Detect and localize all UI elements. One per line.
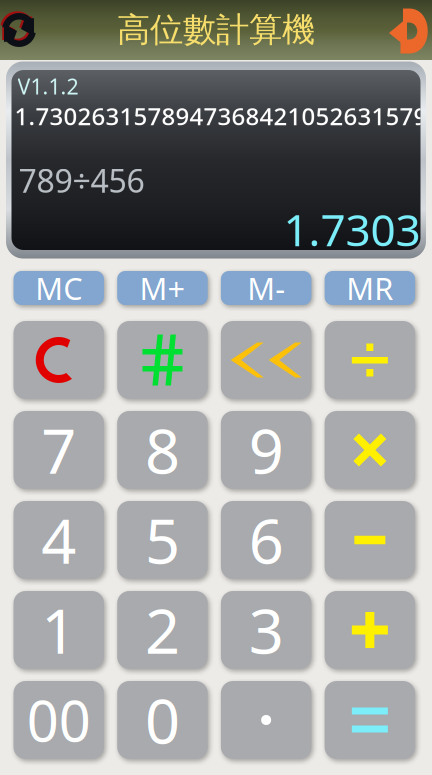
button[interactable]: 7 <box>13 411 104 489</box>
button[interactable]: 9 <box>221 411 311 489</box>
staticText: 1.7303 <box>283 200 420 258</box>
staticText: M+ <box>139 268 185 308</box>
staticText: 4 <box>41 499 76 581</box>
staticText: MR <box>346 268 393 308</box>
staticText: 6 <box>249 499 284 581</box>
button[interactable]: Backspace <box>221 321 311 399</box>
button[interactable]: 4 <box>13 501 104 579</box>
button[interactable]: 6 <box>221 501 311 579</box>
button[interactable]: Hash <box>117 321 208 399</box>
staticText: 00 <box>27 683 91 757</box>
staticText: 8 <box>145 409 180 491</box>
staticText: 9 <box>249 409 284 491</box>
button[interactable]: 0 <box>117 681 208 759</box>
staticText: 3 <box>249 589 284 671</box>
staticText: 高位數計算機 <box>117 9 315 50</box>
button[interactable]: Clear <box>13 321 104 399</box>
button[interactable]: MC <box>13 271 104 305</box>
button[interactable]: Equals <box>325 681 415 759</box>
button[interactable]: Minus <box>325 501 415 579</box>
staticText: 7 <box>41 409 76 491</box>
button[interactable]: Decimal point <box>221 681 311 759</box>
button[interactable]: Multiply <box>325 411 415 489</box>
staticText: V1.1.2 <box>17 72 78 100</box>
button[interactable]: 1 <box>13 591 104 669</box>
button[interactable]: 00 <box>13 681 104 759</box>
button[interactable]: Refresh <box>0 0 47 60</box>
staticText: 1 <box>41 589 76 671</box>
button[interactable]: MR <box>325 271 415 305</box>
staticText: MC <box>35 268 82 308</box>
button[interactable]: Divide <box>325 321 415 399</box>
button[interactable]: M+ <box>117 271 208 305</box>
button[interactable]: Plus <box>325 591 415 669</box>
staticText: 0 <box>145 679 180 761</box>
button[interactable]: 8 <box>117 411 208 489</box>
staticText: 2 <box>145 589 180 671</box>
staticText: M- <box>247 268 285 308</box>
button[interactable]: M- <box>221 271 311 305</box>
staticText: 5 <box>145 499 180 581</box>
button[interactable]: 2 <box>117 591 208 669</box>
button[interactable]: Undo <box>373 9 429 69</box>
button[interactable]: 5 <box>117 501 208 579</box>
button[interactable]: 3 <box>221 591 311 669</box>
staticText: 789÷456 <box>18 159 144 201</box>
staticText: 1.7302631578947368421052631579 <box>14 100 427 132</box>
